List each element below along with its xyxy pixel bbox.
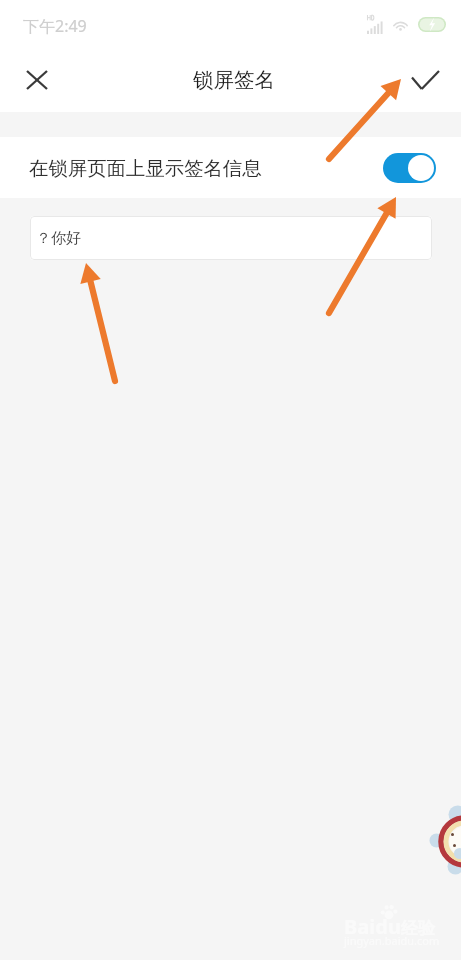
button[interactable]: 在锁屏页面上显示签名信息 <box>0 137 461 198</box>
staticText: 锁屏签名 <box>193 67 275 93</box>
button[interactable]: Close <box>14 57 60 103</box>
staticText: 在锁屏页面上显示签名信息 <box>29 156 262 180</box>
staticText: ？你好 <box>36 229 81 248</box>
button[interactable]: Confirm <box>402 57 448 103</box>
button[interactable]: Toggle signature on lock screen <box>383 153 436 183</box>
staticText: 下午2:49 <box>23 15 87 37</box>
button[interactable]: ？你好 <box>30 216 432 260</box>
